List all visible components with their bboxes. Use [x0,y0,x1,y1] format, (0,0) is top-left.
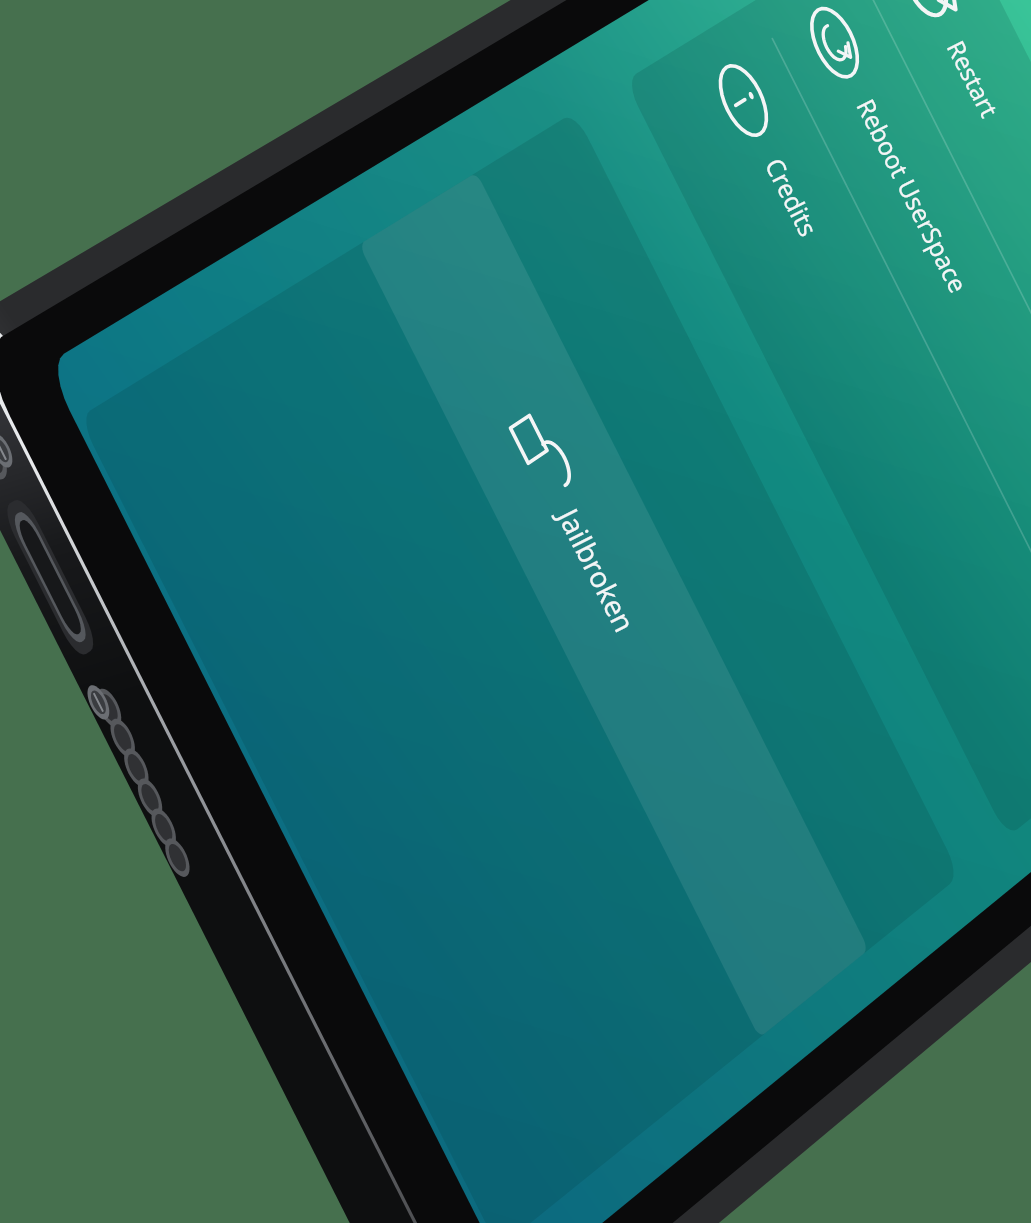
button[interactable]: Loading [117,731,236,819]
button[interactable]: Credits [505,373,1031,477]
button[interactable]: Jailbroken status [464,587,1031,722]
button[interactable]: Reboot UserSpace [567,275,1031,379]
button[interactable]: Restart [639,177,1031,281]
button[interactable]: App menu [340,856,476,959]
button[interactable]: Power [229,793,355,888]
